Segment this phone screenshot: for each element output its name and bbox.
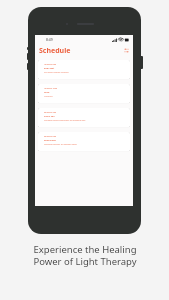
button[interactable]: 15 min at 10:30 [38, 84, 130, 103]
staticText: 15 min at 10:30 [44, 87, 58, 89]
staticText: 30 min at 6:00 [44, 135, 57, 137]
button[interactable]: 30 min at 6:00 [38, 132, 130, 151]
staticText: Collagen boost treatment for glowing ski… [44, 119, 86, 122]
button[interactable]: 15 min at 8:00 [38, 60, 130, 79]
staticText: 15 min at 8:00 [44, 63, 57, 65]
staticText: Glow [44, 91, 50, 94]
staticText: 8:49 [46, 37, 53, 42]
staticText: Schedule [39, 46, 71, 56]
button[interactable]: 30 min at 3:00 [38, 108, 130, 127]
staticText: Full body energy support [44, 71, 69, 74]
staticText: Infrared therapy for deeper sleep [44, 143, 77, 146]
staticText: 30 min at 3:00 [44, 111, 57, 113]
staticText: Experience the Healing Power of Light Th… [33, 243, 137, 268]
button[interactable]: Filter [124, 48, 129, 53]
staticText: Workout [44, 95, 53, 98]
staticText: Deep Sleep [44, 139, 56, 142]
staticText: Red Light [44, 67, 55, 70]
staticText: Facial Spa [44, 115, 55, 118]
